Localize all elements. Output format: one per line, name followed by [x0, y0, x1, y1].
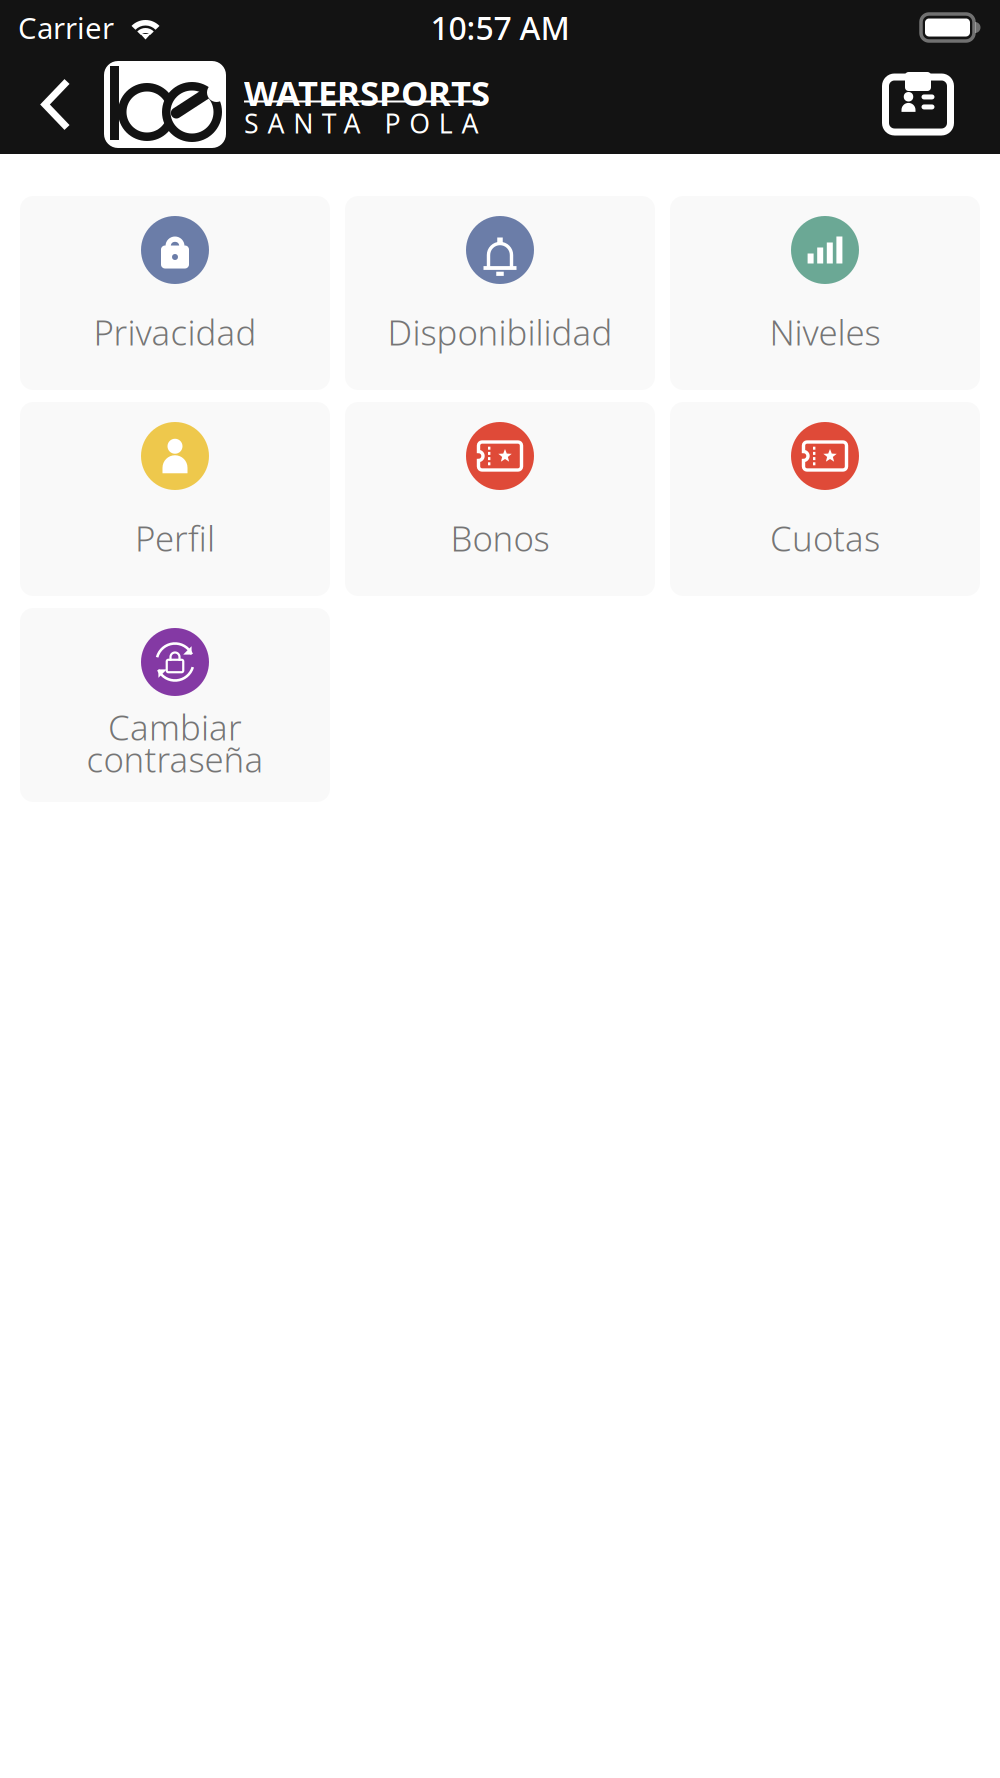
- staticText: contraseña: [86, 736, 263, 782]
- staticText: Cambiar: [108, 704, 242, 750]
- staticText: SANTA POLA: [244, 105, 478, 141]
- staticText: WATERSPORTS: [244, 69, 490, 115]
- staticText: Perfil: [135, 515, 215, 561]
- staticText: Bonos: [450, 515, 549, 561]
- button[interactable]: Bonos: [345, 402, 655, 596]
- button[interactable]: Disponibilidad: [345, 196, 655, 390]
- button[interactable]: Atrás: [24, 55, 88, 154]
- staticText: Niveles: [769, 309, 880, 355]
- button[interactable]: Carnet: [882, 55, 954, 154]
- button[interactable]: Cambiar: [20, 608, 330, 802]
- button[interactable]: Perfil: [20, 402, 330, 596]
- staticText: Cuotas: [770, 515, 880, 561]
- button[interactable]: Cuotas: [670, 402, 980, 596]
- button[interactable]: Privacidad: [20, 196, 330, 390]
- staticText: Disponibilidad: [387, 309, 612, 355]
- staticText: Carrier: [18, 8, 114, 47]
- button[interactable]: Niveles: [670, 196, 980, 390]
- staticText: Privacidad: [93, 309, 256, 355]
- staticText: 10:57 AM: [430, 6, 569, 49]
